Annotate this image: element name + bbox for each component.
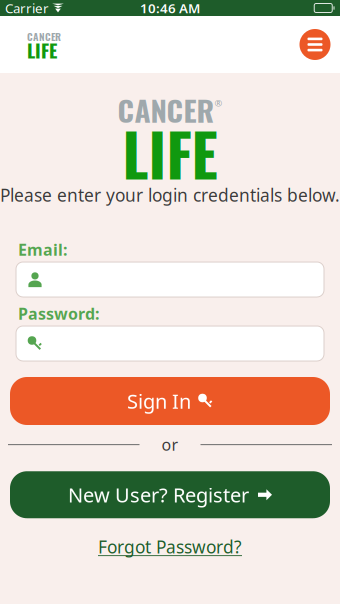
button[interactable]: Menu bbox=[293, 22, 337, 66]
button[interactable]: Sign In bbox=[10, 377, 330, 425]
staticText: New User? Register bbox=[68, 481, 249, 508]
staticText: 10:46 AM bbox=[140, 0, 200, 17]
staticText: Email: bbox=[18, 239, 67, 260]
staticText: LIFE bbox=[122, 109, 217, 196]
staticText: or bbox=[161, 434, 178, 455]
staticText: Carrier bbox=[5, 0, 49, 17]
staticText: ® bbox=[214, 97, 222, 109]
staticText: CANCER bbox=[27, 29, 61, 44]
staticText: Forgot Password? bbox=[98, 535, 242, 558]
staticText: Password: bbox=[18, 303, 99, 324]
button[interactable]: New User? Register bbox=[10, 471, 330, 518]
staticText: CANCER bbox=[117, 88, 214, 131]
staticText: Please enter your login credentials belo… bbox=[0, 183, 340, 206]
staticText: LIFE bbox=[27, 36, 57, 64]
button[interactable]: Forgot Password? bbox=[90, 530, 250, 563]
staticText: Sign In bbox=[127, 388, 191, 414]
